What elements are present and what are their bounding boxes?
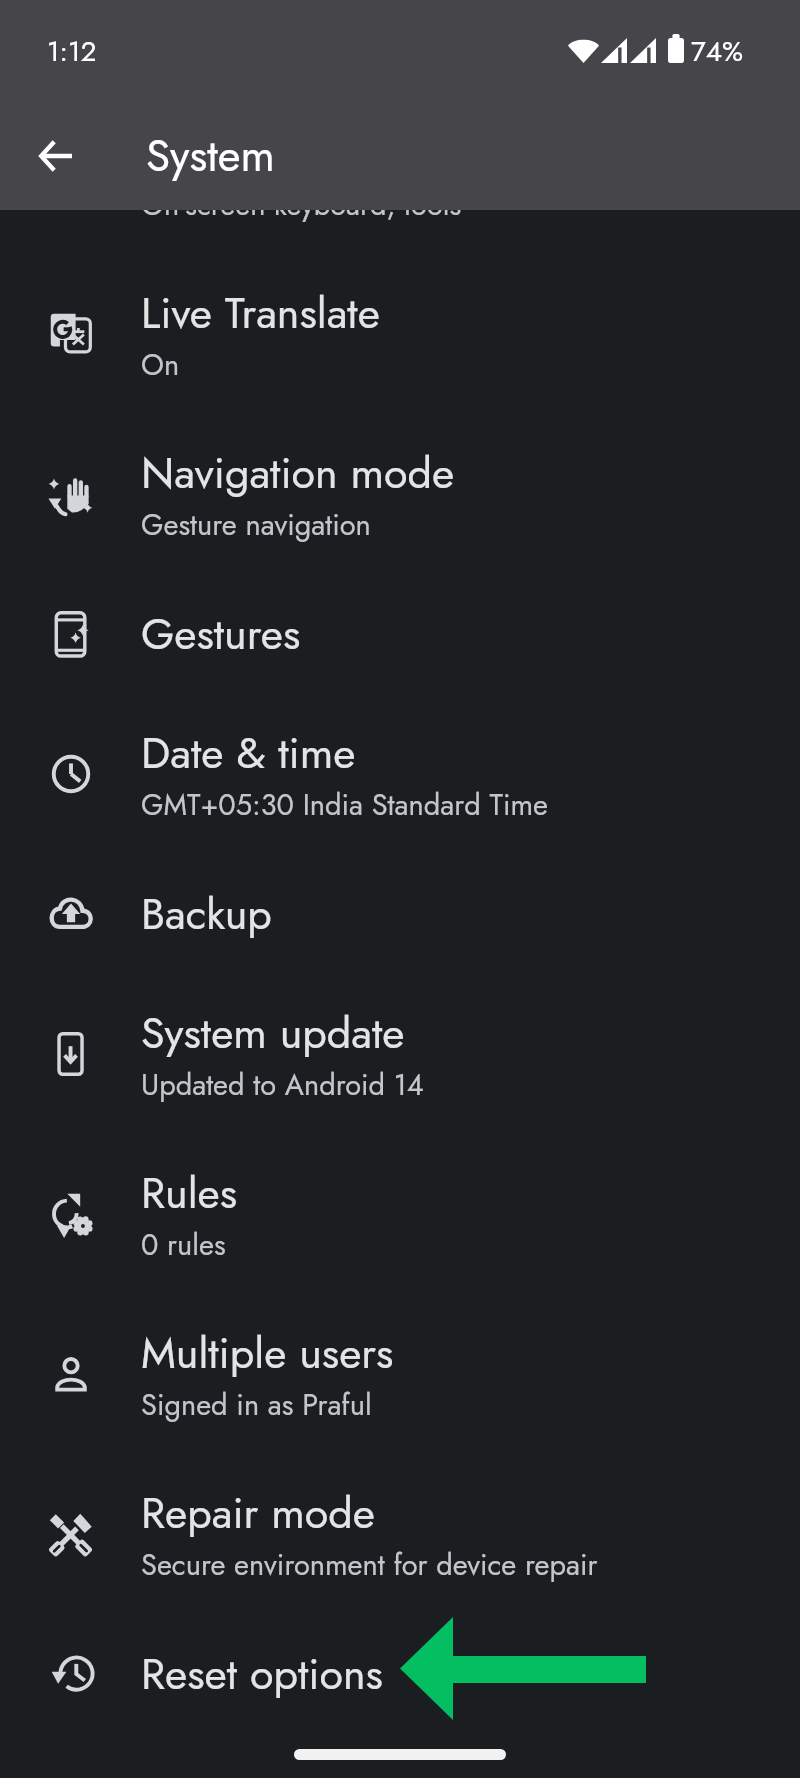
staticText: Secure environment for device repair <box>141 1544 598 1586</box>
staticText: Gesture navigation <box>141 504 371 546</box>
button[interactable]: Repair mode <box>0 1454 800 1614</box>
staticText: System <box>146 124 275 188</box>
staticText: Multiple users <box>141 1322 394 1384</box>
staticText: Live Translate <box>141 282 380 344</box>
button[interactable]: System update <box>0 974 800 1134</box>
button[interactable]: Date & time <box>0 694 800 854</box>
staticText: 1:12 <box>47 31 97 71</box>
button[interactable]: Gestures <box>0 574 800 694</box>
staticText: Reset options <box>141 1643 383 1705</box>
staticText: On-screen keyboard, tools <box>141 184 462 226</box>
button[interactable]: Live Translate <box>0 254 800 414</box>
staticText: System update <box>141 1002 405 1064</box>
staticText: On <box>141 344 180 386</box>
staticText: Updated to Android 14 <box>141 1064 424 1106</box>
staticText: GMT+05:30 India Standard Time <box>141 784 548 826</box>
staticText: Repair mode <box>141 1482 375 1544</box>
staticText: Gestures <box>141 603 301 665</box>
button[interactable]: Reset options <box>0 1614 800 1734</box>
button[interactable]: On-screen keyboard <box>0 94 800 254</box>
staticText: Signed in as Praful <box>141 1384 372 1426</box>
button[interactable]: Multiple users <box>0 1294 800 1454</box>
staticText: Rules <box>141 1162 238 1224</box>
staticText: Date & time <box>141 722 356 784</box>
button[interactable]: Rules <box>0 1134 800 1294</box>
staticText: Navigation mode <box>141 442 455 504</box>
staticText: Backup <box>141 883 272 945</box>
staticText: On-screen keyboard <box>141 122 505 184</box>
button[interactable]: Backup <box>0 854 800 974</box>
staticText: 74% <box>691 31 744 71</box>
button[interactable]: Back <box>15 116 95 196</box>
staticText: 0 rules <box>141 1224 226 1266</box>
button[interactable]: Navigation mode <box>0 414 800 574</box>
